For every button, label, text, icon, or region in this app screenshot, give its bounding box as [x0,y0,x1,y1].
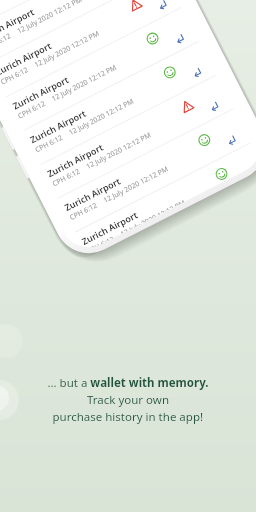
button[interactable]: Back [133,10,151,28]
